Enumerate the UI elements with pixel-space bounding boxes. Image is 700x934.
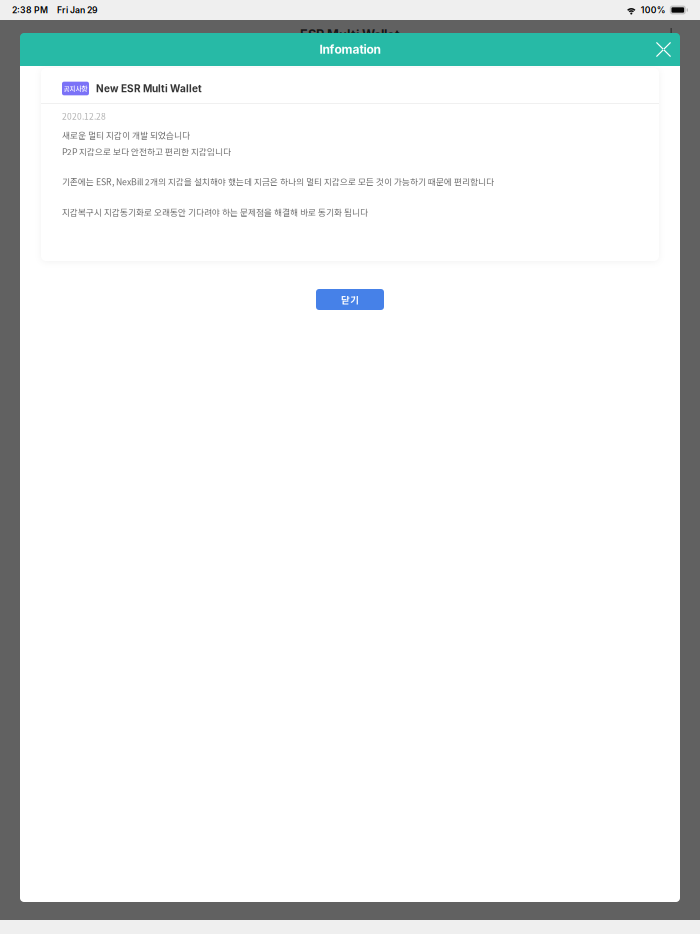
- staticText: ESR Multi Wallet: [300, 27, 400, 42]
- staticText: 기존에는 ESR, NexBill 2개의 지갑을 설치해야 했는데 지금은 하…: [62, 175, 494, 188]
- button[interactable]: Close: [647, 33, 680, 66]
- staticText: 닫기: [341, 293, 359, 306]
- staticText: Fri Jan 29: [57, 5, 98, 15]
- staticText: 100%: [641, 5, 666, 15]
- staticText: 2:38 PM: [12, 5, 48, 15]
- button[interactable]: 닫기: [316, 289, 384, 310]
- staticText: 새로운 멀티 지갑이 개발 되었습니다: [62, 129, 190, 141]
- staticText: 공지사항: [63, 84, 87, 93]
- staticText: 지갑복구시 지갑동기화로 오래동안 기다려야 하는 문제점을 해결해 바로 동기…: [62, 206, 368, 218]
- staticText: New ESR Multi Wallet: [96, 82, 202, 95]
- staticText: Infomation: [319, 42, 380, 57]
- staticText: 2020.12.28: [62, 110, 106, 122]
- staticText: P2P 지갑으로 보다 안전하고 편리한 지갑입니다: [62, 145, 231, 158]
